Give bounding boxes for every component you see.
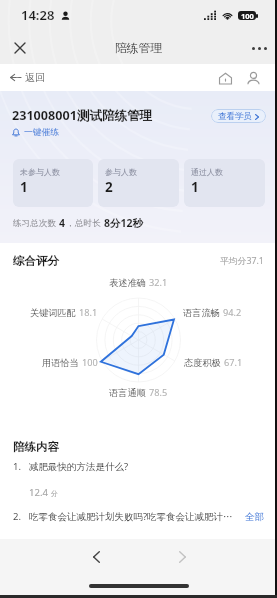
button[interactable]: 通过人数 [184, 159, 265, 207]
staticText: 总时长 [75, 218, 101, 229]
button[interactable]: Home [215, 68, 235, 88]
button[interactable]: 参与人数 [98, 159, 179, 207]
staticText: 32.1 [149, 276, 168, 289]
staticText: 态度积极 [184, 357, 221, 369]
staticText: 14:28 [21, 6, 55, 24]
button[interactable]: Profile [243, 68, 263, 88]
button[interactable]: Forward [170, 545, 194, 569]
button[interactable]: 2. [13, 510, 264, 523]
staticText: 语言流畅 [183, 307, 220, 319]
staticText: 语言通顺 [109, 387, 146, 399]
staticText: 100 [82, 356, 98, 369]
staticText: 18.1 [79, 306, 98, 319]
staticText: 1 [20, 178, 28, 196]
staticText: 12.4 [29, 486, 49, 499]
staticText: 陪练内容 [13, 440, 59, 454]
staticText: 通过人数 [191, 167, 223, 177]
staticText: 1. [13, 460, 29, 473]
staticText: 吃零食会让减肥计划失败吗?吃零食会让减肥计划 ... [29, 510, 241, 523]
staticText: 用语恰当 [42, 357, 79, 369]
staticText: 关键词匹配 [30, 307, 76, 319]
staticText: ， [66, 218, 75, 229]
button[interactable]: 全部 [245, 511, 264, 523]
staticText: 查看学员 [218, 111, 252, 122]
button[interactable]: 查看学员 [211, 109, 266, 123]
button[interactable]: Close [7, 35, 33, 61]
staticText: 表述准确 [109, 277, 146, 289]
staticText: 2 [105, 178, 113, 196]
staticText: 平均分37.1 [220, 255, 264, 267]
staticText: 8分12秒 [104, 216, 144, 230]
staticText: 返回 [25, 71, 45, 84]
staticText: 4 [59, 216, 66, 230]
staticText: 陪练管理 [115, 41, 163, 56]
staticText: 一键催练 [24, 127, 60, 138]
staticText: 练习总次数 [13, 218, 56, 229]
button[interactable]: 一键催练 [12, 127, 60, 138]
staticText: 231008001测试陪练管理 [12, 107, 211, 124]
staticText: 综合评分 [13, 254, 220, 268]
staticText: 2. [13, 510, 29, 523]
staticText: 减肥最快的方法是什么? [29, 460, 129, 473]
staticText: 未参与人数 [20, 167, 60, 177]
button[interactable]: Back [84, 545, 108, 569]
button[interactable]: 1. [13, 460, 264, 499]
staticText: 参与人数 [105, 167, 137, 177]
staticText: 78.5 [149, 386, 168, 399]
staticText: 分 [51, 489, 58, 498]
button[interactable]: 未参与人数 [13, 159, 93, 207]
staticText: 67.1 [224, 356, 243, 369]
staticText: 1 [191, 178, 199, 196]
button[interactable]: 返回 [7, 68, 48, 87]
button[interactable]: More options [246, 35, 272, 61]
staticText: 100 [241, 11, 254, 20]
staticText: 94.2 [223, 306, 242, 319]
